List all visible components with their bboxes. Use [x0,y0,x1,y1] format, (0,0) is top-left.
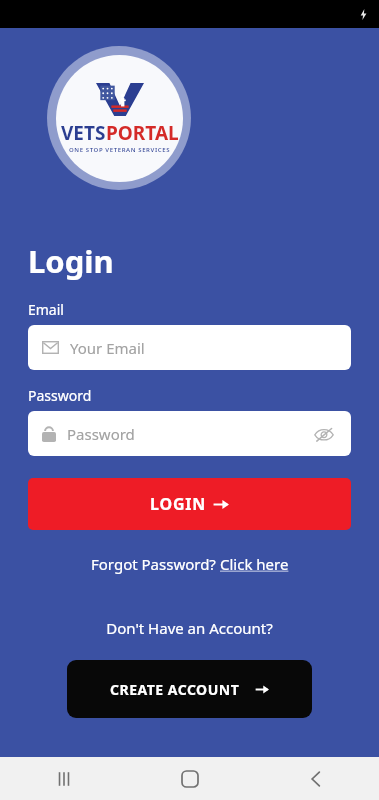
staticText: CREATE ACCOUNT [110,680,240,699]
staticText: LOGIN [150,493,207,515]
staticText: Email [28,300,64,319]
staticText: Password [28,386,92,405]
staticText: VETS [61,120,106,146]
staticText: Your Email [70,338,145,358]
button[interactable]: Click here [220,554,289,574]
button[interactable]: LOGIN [28,478,351,530]
button[interactable]: Your Email [28,325,351,370]
staticText: Password [67,424,135,444]
button[interactable]: Password [28,411,351,456]
staticText: Forgot Password? [91,554,220,574]
button[interactable]: Back [253,757,379,800]
staticText: Click here [220,554,289,574]
button[interactable]: Recent apps [0,757,127,800]
staticText: Don't Have an Account? [0,618,379,638]
button[interactable]: CREATE ACCOUNT [67,660,312,718]
staticText: PORTAL [106,120,179,146]
staticText: ONE STOP VETERAN SERVICES [69,146,171,154]
staticText: Login [28,240,114,282]
button[interactable]: Home [127,757,253,800]
button[interactable]: Show password [311,421,337,447]
